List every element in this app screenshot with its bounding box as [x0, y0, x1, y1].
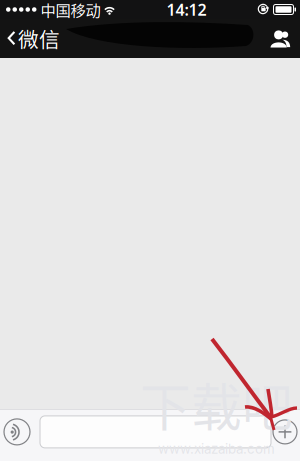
staticText: 14:12	[166, 0, 206, 20]
button[interactable]: Contacts	[260, 19, 300, 58]
staticText: 中国移动	[40, 0, 100, 21]
staticText: 微信	[18, 23, 60, 53]
button[interactable]: Voice message	[0, 416, 34, 448]
staticText: 下载吧	[140, 367, 293, 441]
button[interactable]: More	[271, 416, 299, 448]
button[interactable]: 微信	[0, 19, 68, 58]
staticText: www.xiazaiba.com	[158, 441, 275, 457]
